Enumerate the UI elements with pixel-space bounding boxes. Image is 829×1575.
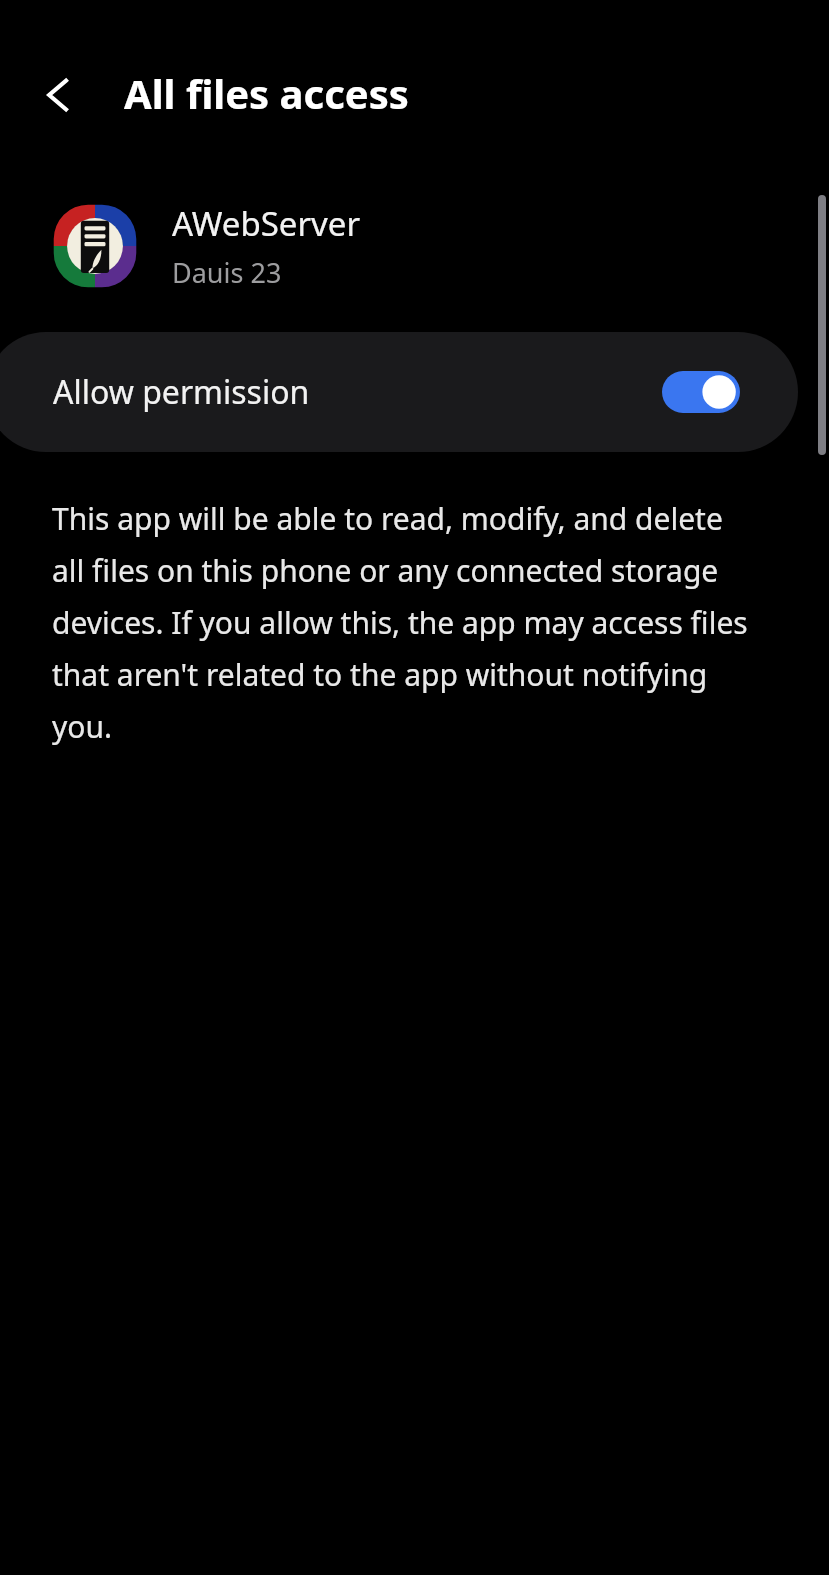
button[interactable]: Allow permission	[0, 332, 798, 452]
button[interactable]: Back	[26, 63, 90, 127]
staticText: Allow permission	[53, 370, 310, 414]
staticText: AWebServer	[172, 201, 361, 246]
staticText: This app will be able to read, modify, a…	[52, 498, 759, 747]
staticText: Dauis 23	[172, 254, 282, 291]
staticText: All files access	[124, 66, 409, 120]
